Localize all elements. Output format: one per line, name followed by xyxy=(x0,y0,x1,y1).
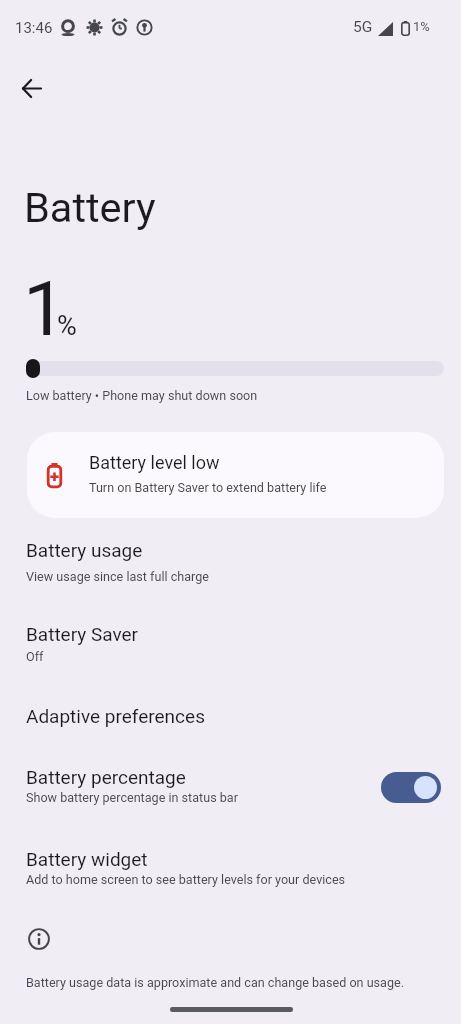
staticText: View usage since last full charge xyxy=(26,569,209,584)
staticText: Battery widget xyxy=(26,848,148,870)
button[interactable]: Battery Saver xyxy=(0,616,461,672)
staticText: Battery percentage xyxy=(26,766,186,788)
staticText: Show battery percentage in status bar xyxy=(26,790,238,805)
staticText: Turn on Battery Saver to extend battery … xyxy=(89,480,327,495)
staticText: Add to home screen to see battery levels… xyxy=(26,872,346,887)
staticText: Battery Saver xyxy=(26,623,139,645)
staticText: % xyxy=(57,310,77,342)
staticText: Battery usage data is approximate and ca… xyxy=(26,975,405,990)
staticText: Battery usage xyxy=(26,539,143,561)
button[interactable]: Battery usage xyxy=(0,532,461,588)
staticText: Battery xyxy=(24,183,156,232)
button[interactable] xyxy=(381,772,441,803)
staticText: Low battery • Phone may shut down soon xyxy=(26,388,258,403)
staticText: 1 xyxy=(23,264,66,353)
staticText: 5G xyxy=(353,18,373,36)
button[interactable]: Adaptive preferences xyxy=(0,698,461,732)
button[interactable]: Battery level low xyxy=(27,432,444,518)
staticText: 13:46 xyxy=(15,19,53,37)
staticText: Adaptive preferences xyxy=(26,705,205,727)
button[interactable] xyxy=(14,71,48,105)
button[interactable]: Battery percentage xyxy=(0,759,461,815)
staticText: 1% xyxy=(413,19,430,34)
staticText: Off xyxy=(26,649,44,664)
staticText: Battery level low xyxy=(89,452,220,473)
button[interactable]: Battery widget xyxy=(0,841,461,897)
